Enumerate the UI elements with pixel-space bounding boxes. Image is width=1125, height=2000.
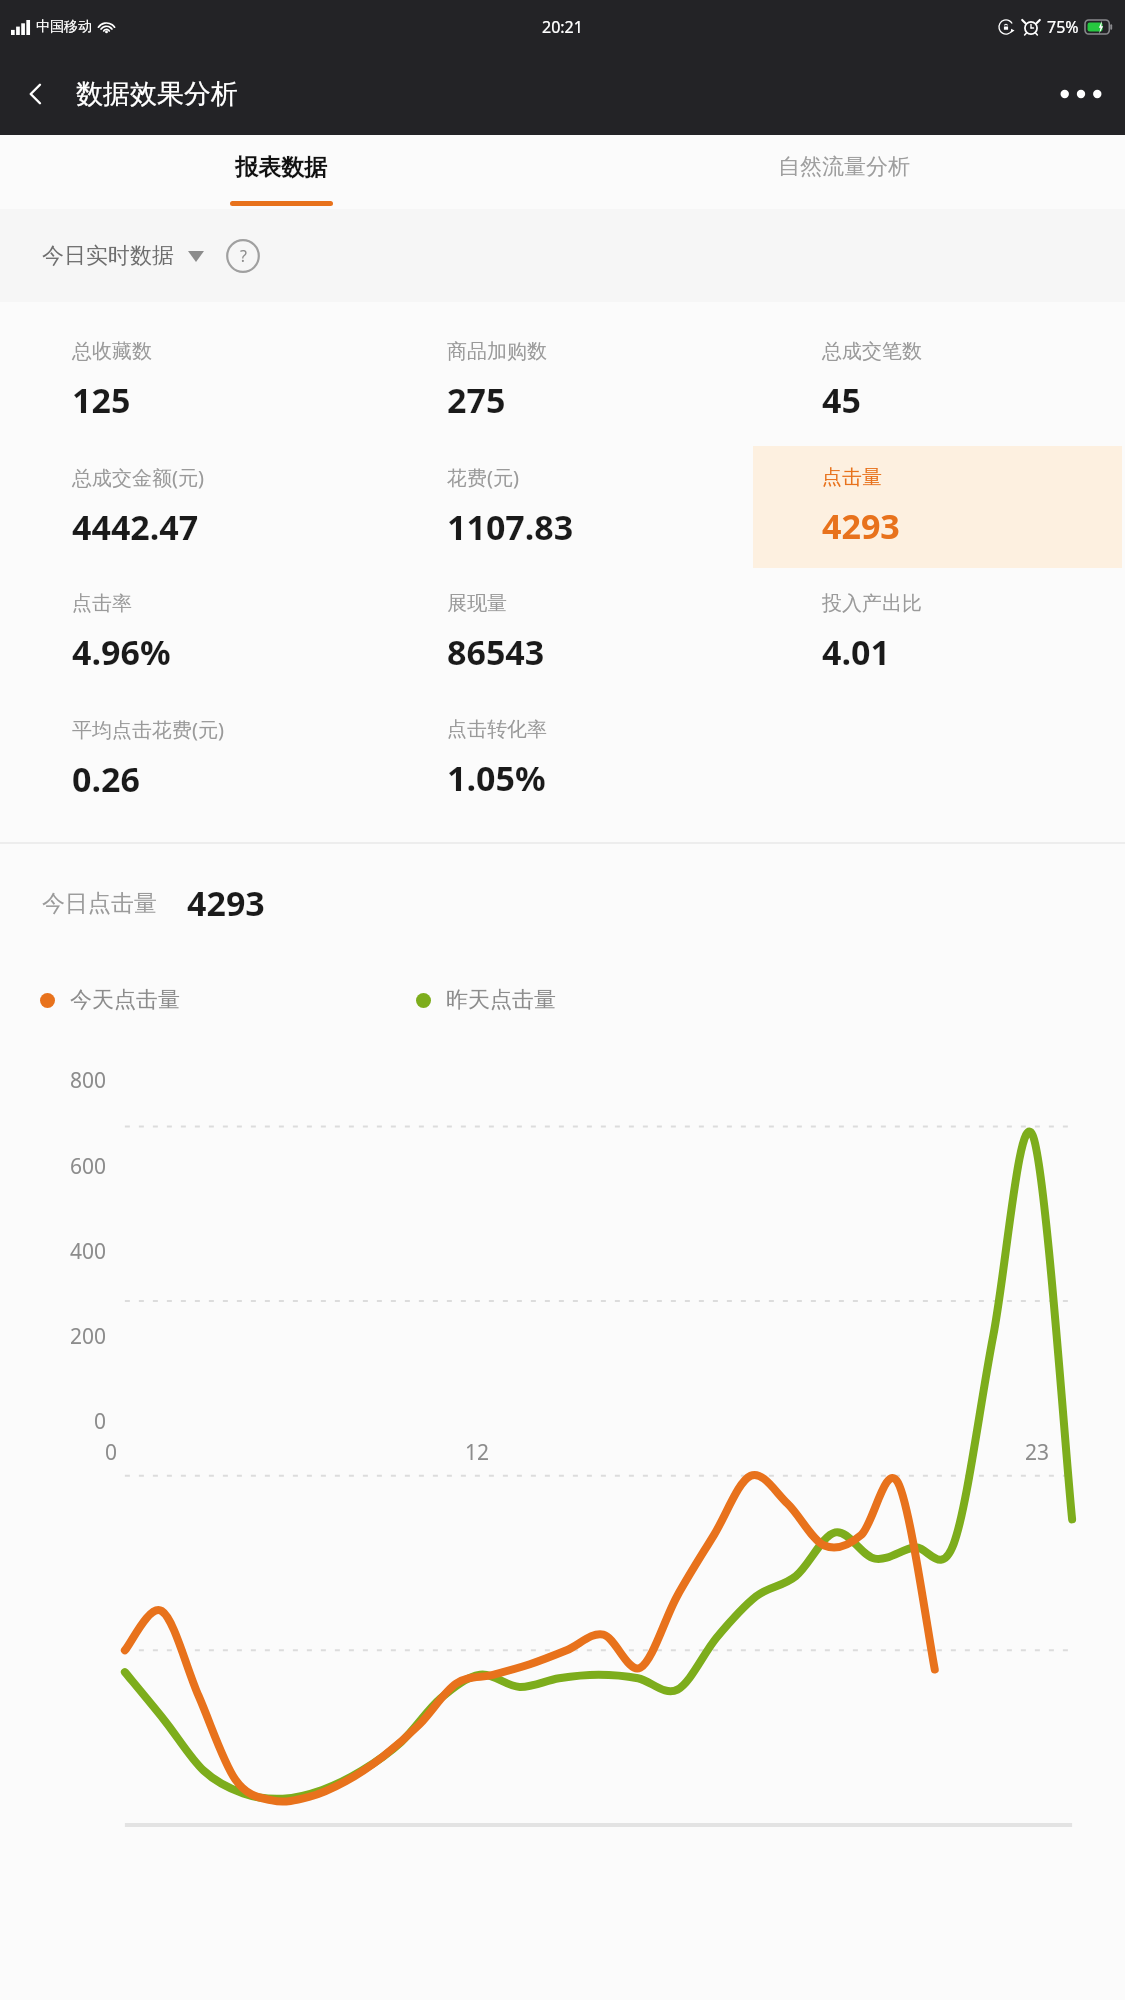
staticText: 点击转化率 (447, 717, 547, 742)
staticText: 200 (70, 1322, 107, 1351)
staticText: 总成交笔数 (822, 339, 922, 364)
staticText: 昨天点击量 (446, 986, 556, 1014)
button[interactable]: 总成交金额(元) (3, 446, 372, 568)
staticText: 商品加购数 (447, 339, 547, 364)
button[interactable]: 今天点击量 (40, 986, 180, 1014)
staticText: 投入产出比 (822, 591, 922, 616)
staticText: 23 (1025, 1438, 1050, 1467)
button[interactable]: 报表数据 (0, 135, 562, 209)
staticText: 12 (465, 1438, 490, 1467)
staticText: 275 (447, 377, 506, 423)
staticText: 0 (94, 1407, 107, 1436)
staticText: 报表数据 (235, 153, 327, 182)
staticText: 4.96% (72, 629, 171, 675)
button[interactable]: 更多 (1051, 69, 1111, 119)
staticText: 0 (105, 1438, 118, 1467)
staticText: 中国移动 (36, 18, 92, 36)
staticText: 400 (70, 1237, 107, 1266)
staticText: 点击量 (822, 465, 882, 490)
staticText: 点击率 (72, 591, 132, 616)
staticText: 86543 (447, 629, 545, 675)
button[interactable]: 自然流量分析 (562, 135, 1125, 209)
button[interactable]: 点击量 (753, 446, 1122, 568)
staticText: 花费(元) (447, 464, 519, 491)
button[interactable]: 点击率 (3, 572, 372, 694)
staticText: 自然流量分析 (778, 153, 910, 181)
staticText: 0.26 (72, 756, 140, 802)
staticText: 800 (70, 1066, 107, 1095)
staticText: 4.01 (822, 629, 890, 675)
button[interactable]: 帮助 (226, 239, 260, 273)
button[interactable]: 点击转化率 (378, 698, 747, 820)
button[interactable]: 总收藏数 (3, 320, 372, 442)
button[interactable]: 昨天点击量 (416, 986, 556, 1014)
button[interactable]: 返回 (8, 66, 64, 122)
staticText: 45 (822, 377, 861, 423)
button[interactable]: 平均点击花费(元) (3, 698, 372, 820)
staticText: 4442.47 (72, 504, 199, 550)
staticText: 今日点击量 (42, 889, 157, 918)
staticText: 4293 (187, 880, 265, 926)
staticText: 平均点击花费(元) (72, 716, 224, 743)
button[interactable]: 总成交笔数 (753, 320, 1122, 442)
button[interactable]: 投入产出比 (753, 572, 1122, 694)
staticText: 今天点击量 (70, 986, 180, 1014)
button[interactable]: 今日实时数据 (42, 242, 204, 270)
staticText: 4293 (822, 503, 900, 549)
staticText: 75% (1047, 16, 1079, 38)
staticText: 125 (72, 377, 131, 423)
staticText: 总收藏数 (72, 339, 152, 364)
staticText: 20:21 (542, 16, 583, 38)
staticText: 数据效果分析 (76, 77, 238, 111)
staticText: 1.05% (447, 755, 546, 801)
staticText: 600 (70, 1152, 107, 1181)
button[interactable]: 商品加购数 (378, 320, 747, 442)
staticText: 总成交金额(元) (72, 464, 204, 491)
staticText: 1107.83 (447, 504, 574, 550)
button[interactable]: 展现量 (378, 572, 747, 694)
staticText: ? (240, 245, 247, 267)
staticText: 展现量 (447, 591, 507, 616)
staticText: 今日实时数据 (42, 242, 174, 270)
button[interactable]: 花费(元) (378, 446, 747, 568)
